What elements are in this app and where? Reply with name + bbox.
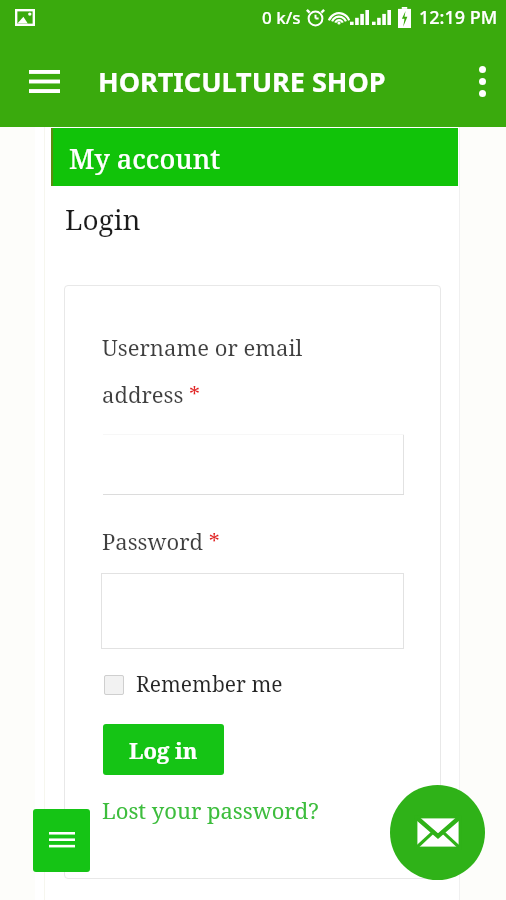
button[interactable]: Lost your password? — [102, 795, 319, 825]
button[interactable]: Remember me — [104, 670, 283, 699]
staticText: 12:19 PM — [419, 5, 498, 30]
staticText: Log in — [129, 735, 198, 765]
button[interactable]: Contact us by email — [390, 785, 485, 880]
button[interactable]: Log in — [103, 724, 224, 775]
staticText: Login — [65, 200, 141, 238]
button[interactable] — [103, 434, 404, 495]
button[interactable]: Open menu — [33, 809, 90, 872]
staticText: Remember me — [136, 670, 283, 699]
staticText: 0 k/s — [262, 6, 301, 29]
staticText: address * — [102, 379, 201, 409]
staticText: Username or email — [102, 332, 303, 362]
button[interactable] — [101, 573, 404, 649]
button[interactable]: Navigation drawer — [18, 55, 70, 107]
staticText: Password * — [102, 526, 220, 556]
staticText: Lost your password? — [102, 795, 319, 825]
staticText: HORTICULTURE SHOP — [98, 63, 386, 100]
button[interactable]: More options — [458, 57, 506, 105]
staticText: My account — [69, 140, 221, 177]
